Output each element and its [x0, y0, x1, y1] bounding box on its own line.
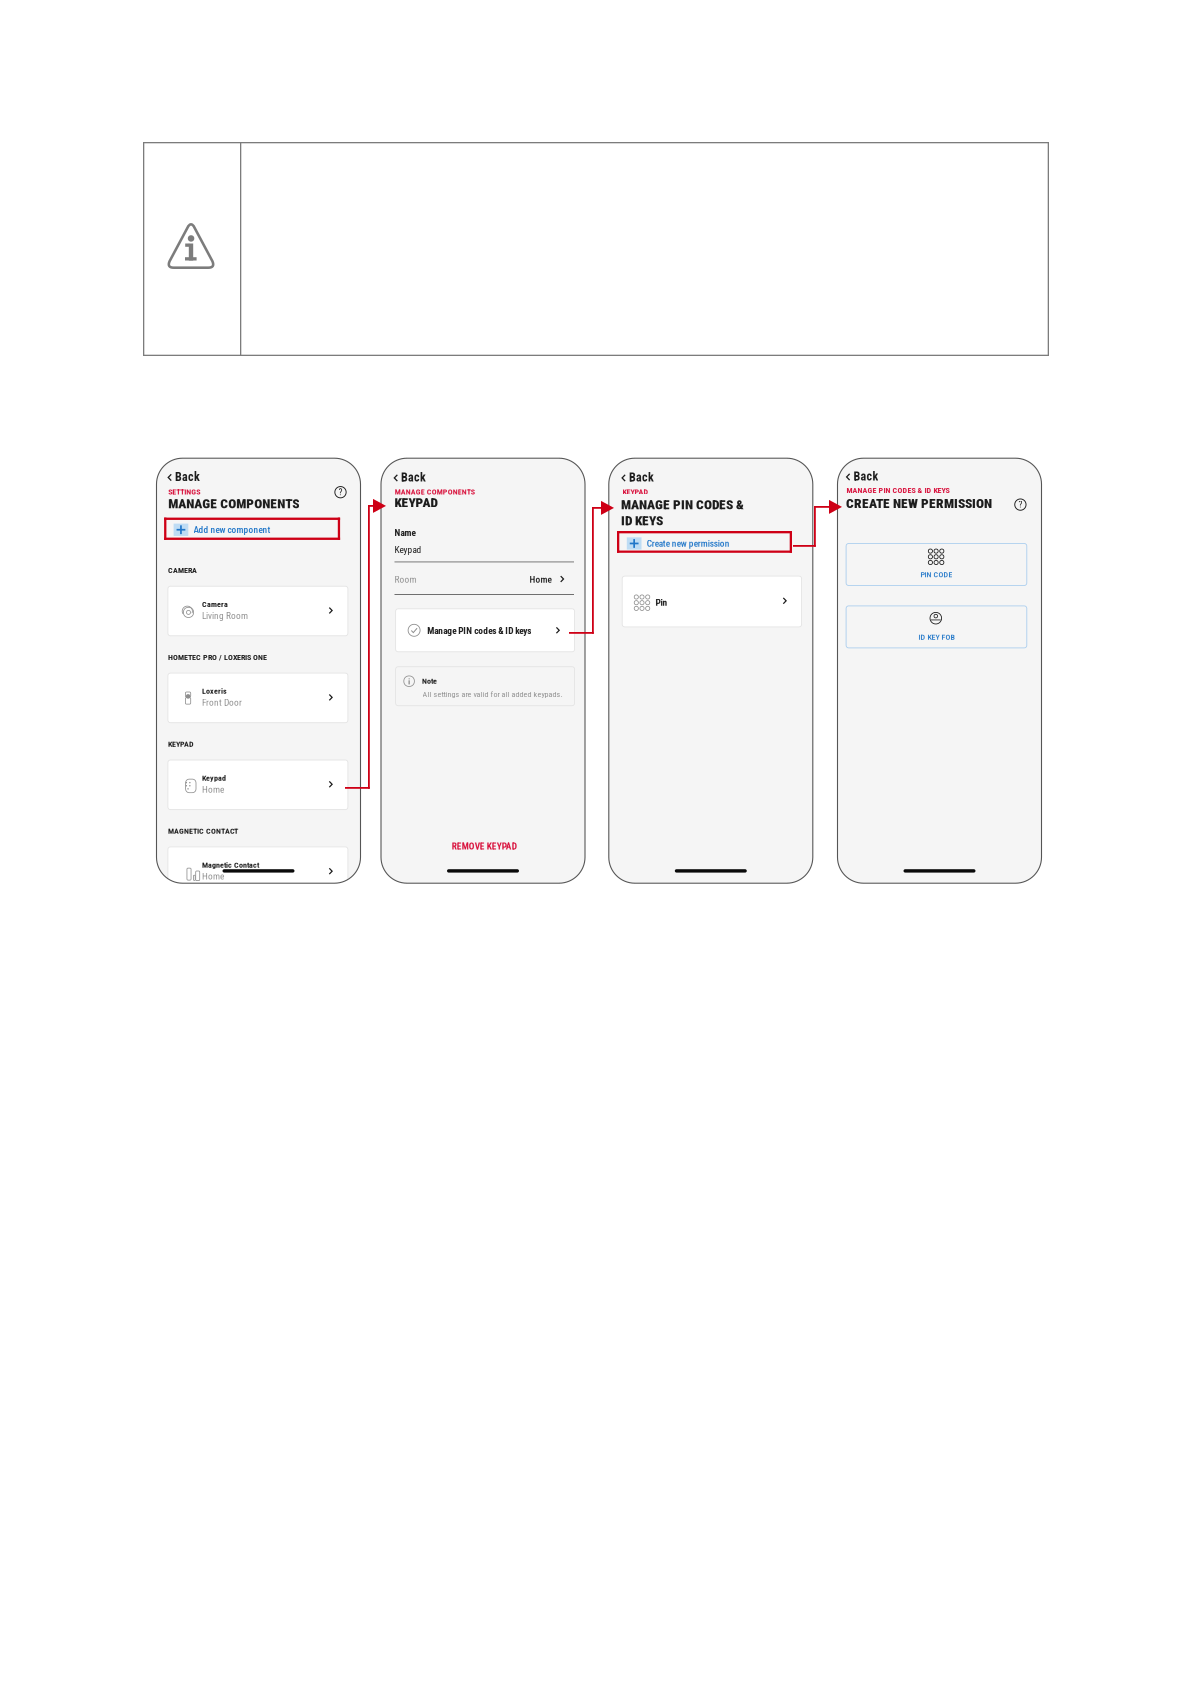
staticText: ? [338, 486, 342, 497]
staticText: Note [422, 676, 437, 686]
button[interactable]: Back [394, 471, 448, 485]
staticText: KEYPAD [622, 487, 648, 496]
staticText: Room [394, 574, 416, 585]
button[interactable]: Manage PIN codes & ID keys [396, 609, 575, 652]
staticText: Name [394, 527, 415, 538]
button[interactable]: Help [1014, 498, 1027, 511]
staticText: Add new component [193, 524, 270, 535]
staticText: Camera [202, 599, 228, 609]
staticText: Keypad [202, 773, 226, 783]
staticText: Living Room [202, 610, 248, 621]
button[interactable]: ID KEY FOB [846, 606, 1027, 648]
button[interactable]: Create new permission [627, 536, 795, 550]
staticText: Back [401, 470, 426, 485]
button[interactable]: Loxeris [168, 673, 348, 723]
staticText: Pin [655, 597, 667, 608]
button[interactable]: Camera [168, 586, 348, 636]
staticText: Magnetic Contact [202, 860, 259, 870]
button[interactable]: Back [846, 470, 900, 484]
button[interactable]: Room [394, 573, 574, 586]
staticText: ? [1018, 499, 1022, 510]
staticText: Back [853, 469, 878, 484]
staticText: SETTINGS [168, 487, 200, 496]
staticText: Keypad [394, 544, 421, 555]
staticText: KEYPAD [394, 495, 437, 510]
staticText: Loxeris [202, 686, 227, 696]
staticText: All settings are valid for all added key… [423, 689, 563, 699]
staticText: PIN CODE [920, 570, 952, 579]
button[interactable]: REMOVE KEYPAD [394, 840, 574, 852]
button[interactable]: Help [334, 486, 347, 499]
staticText: Front Door [202, 697, 242, 708]
button[interactable]: PIN CODE [846, 543, 1027, 585]
staticText: Create new permission [647, 538, 730, 549]
button[interactable]: Pin [622, 576, 802, 627]
staticText: CREATE NEW PERMISSION [846, 496, 992, 511]
button[interactable]: Add new component [174, 523, 342, 537]
staticText: Home [202, 871, 224, 882]
staticText: HOMETEC PRO / LOXERIS ONE [168, 652, 267, 662]
staticText: Manage PIN codes & ID keys [427, 625, 531, 636]
staticText: MANAGE COMPONENTS [395, 487, 475, 496]
staticText: MANAGE PIN CODES & [621, 497, 744, 512]
staticText: KEYPAD [168, 739, 194, 749]
staticText: REMOVE KEYPAD [452, 841, 517, 852]
button[interactable]: Back [167, 471, 221, 485]
staticText: Back [629, 470, 654, 485]
staticText: Home [202, 784, 224, 795]
button[interactable]: Back [621, 471, 675, 485]
staticText: ID KEY FOB [918, 632, 954, 642]
staticText: Back [175, 470, 200, 484]
staticText: MANAGE COMPONENTS [168, 496, 299, 511]
button[interactable]: Keypad [168, 760, 348, 810]
staticText: MANAGE PIN CODES & ID KEYS [846, 485, 949, 495]
staticText: ID KEYS [621, 513, 663, 528]
staticText: CAMERA [168, 566, 197, 575]
staticText: MAGNETIC CONTACT [168, 826, 238, 836]
button[interactable]: Magnetic Contact [168, 847, 348, 896]
staticText: Home [529, 574, 551, 585]
